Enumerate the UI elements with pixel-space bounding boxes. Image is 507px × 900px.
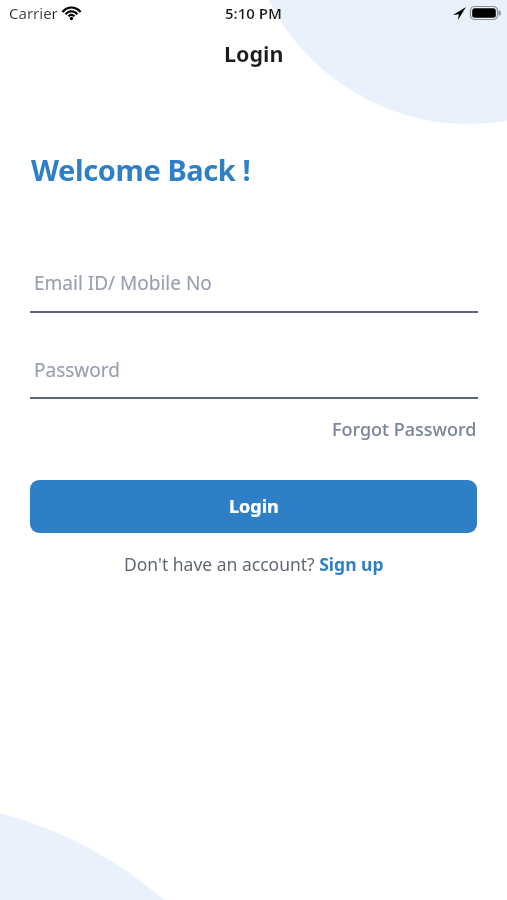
button[interactable]: Don't have an account? Sign up bbox=[124, 552, 384, 576]
staticText: Forgot Password bbox=[332, 417, 477, 442]
button[interactable]: Email ID/ Mobile No bbox=[30, 268, 478, 313]
button[interactable]: Password bbox=[30, 355, 478, 399]
staticText: Welcome Back ! bbox=[31, 150, 251, 189]
staticText: Carrier bbox=[9, 3, 58, 23]
staticText: 5:10 PM bbox=[225, 3, 282, 23]
button[interactable]: Forgot Password bbox=[332, 417, 477, 442]
staticText: Email ID/ Mobile No bbox=[34, 270, 212, 296]
staticText: Don't have an account? Sign up bbox=[124, 552, 384, 576]
button[interactable]: Login bbox=[30, 480, 477, 533]
staticText: Password bbox=[34, 357, 120, 383]
staticText: Login bbox=[224, 39, 284, 68]
staticText: Login bbox=[229, 494, 279, 519]
